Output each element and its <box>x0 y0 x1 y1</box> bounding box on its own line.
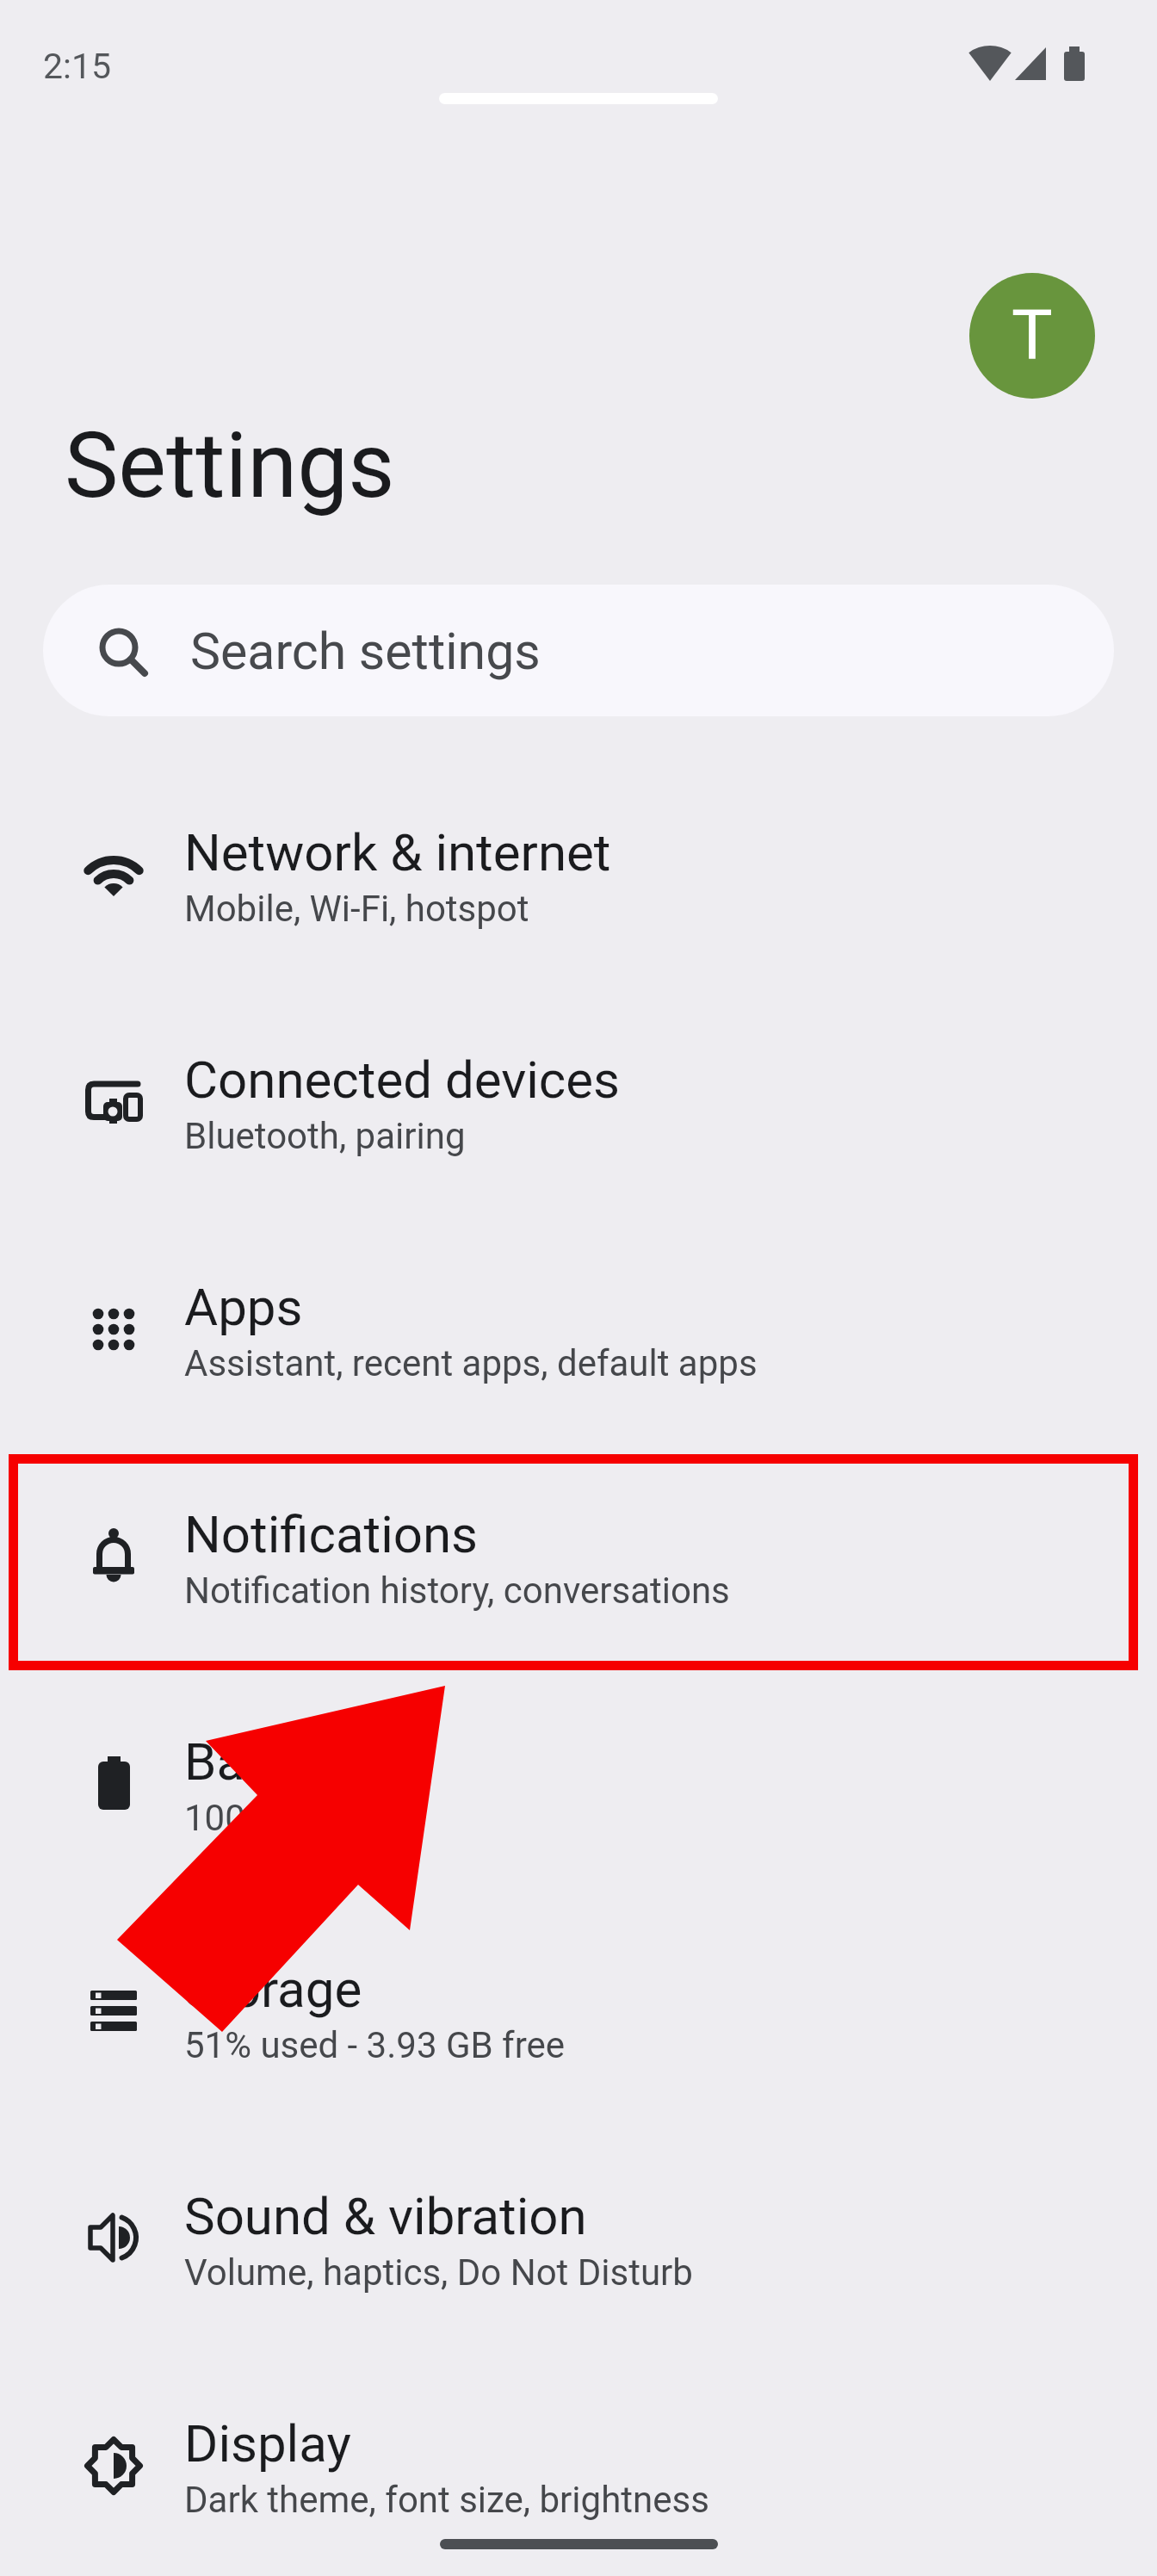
staticText: Volume, haptics, Do Not Disturb <box>184 2251 693 2294</box>
staticText: Dark theme, font size, brightness <box>184 2479 709 2521</box>
staticText: Search settings <box>190 622 541 681</box>
staticText: Connected devices <box>184 1050 621 1110</box>
button[interactable] <box>0 2130 1157 2337</box>
staticText: Notification history, conversations <box>184 1570 730 1612</box>
staticText: Assistant, recent apps, default apps <box>184 1342 758 1384</box>
button[interactable] <box>0 1448 1157 1655</box>
button[interactable] <box>0 766 1157 973</box>
staticText: 100% <box>184 1797 272 1839</box>
staticText: Settings <box>65 413 395 519</box>
staticText: Bluetooth, pairing <box>184 1115 466 1157</box>
button[interactable] <box>0 1903 1157 2109</box>
button[interactable] <box>0 1221 1157 1427</box>
staticText: Mobile, Wi-Fi, hotspot <box>184 888 529 930</box>
staticText: Sound & vibration <box>184 2186 587 2246</box>
staticText: Notifications <box>184 1504 479 1564</box>
staticText: T <box>1012 295 1053 376</box>
staticText: 51% used - 3.93 GB free <box>184 2024 566 2066</box>
button[interactable] <box>0 2357 1157 2564</box>
staticText: 2:15 <box>43 46 112 87</box>
staticText: Display <box>184 2413 351 2474</box>
staticText: Battery <box>184 1731 349 1792</box>
staticText: Apps <box>184 1277 303 1337</box>
button[interactable] <box>0 1675 1157 1882</box>
button[interactable] <box>0 994 1157 1200</box>
staticText: Network & internet <box>184 822 611 882</box>
button[interactable]: T <box>969 273 1095 399</box>
button[interactable] <box>43 585 1114 716</box>
staticText: Storage <box>184 1959 362 2019</box>
